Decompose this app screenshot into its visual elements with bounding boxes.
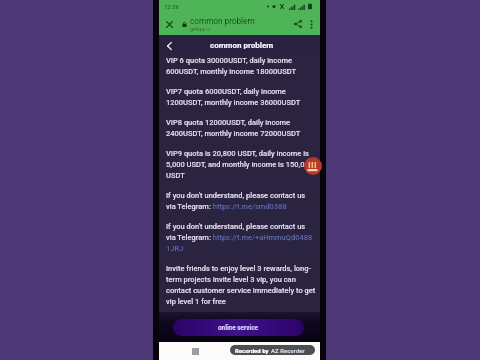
staticText: common problem [190,16,255,26]
staticText: If you don't understand, please contact … [166,191,306,211]
button[interactable]: Promotion [304,157,322,175]
button[interactable]: Back [161,38,177,54]
button[interactable]: Recorder watermark [230,345,315,355]
button[interactable]: More options [305,18,317,30]
staticText: If you don't understand, please contact … [166,222,313,253]
button[interactable]: Share [291,17,305,31]
staticText: AZ Recorder [271,347,305,354]
button[interactable]: Close [163,18,176,31]
staticText: VIP7 quota 6000USDT, daily income 1200US… [166,87,301,107]
staticText: VIP8 quota 12000USDT, daily income 2400U… [166,118,301,138]
staticText: gnhqq.cc [190,26,211,32]
staticText: Invite friends to enjoy level 3 rewards,… [166,264,316,306]
staticText: VIP9 quota is 20,800 USDT, daily income … [166,149,313,180]
button[interactable]: online service [173,319,304,336]
staticText: online service [218,324,259,332]
staticText: common problem [210,41,274,50]
staticText: 12:36 [164,3,179,10]
staticText: VIP 6 quota 30000USDT, daily income 600U… [166,56,297,76]
staticText: Recorded by [235,347,271,354]
